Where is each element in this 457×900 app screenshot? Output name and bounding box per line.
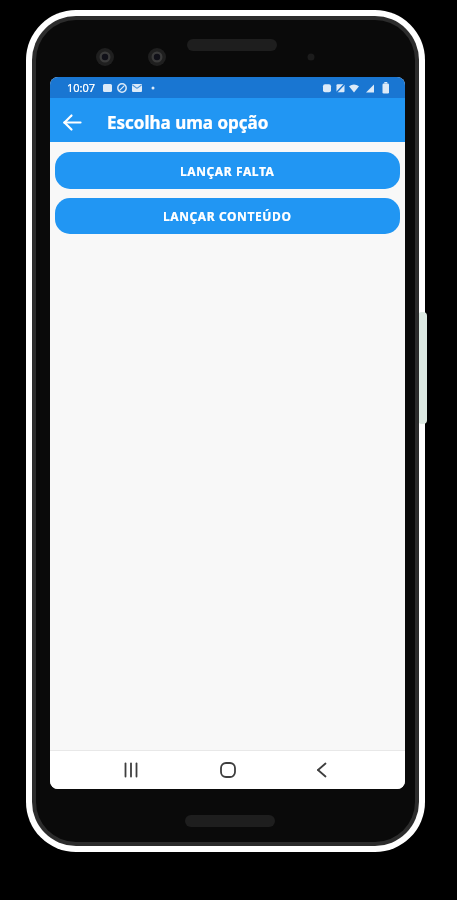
button[interactable]: [210, 754, 246, 786]
staticText: LANÇAR FALTA: [180, 163, 275, 179]
button[interactable]: [50, 102, 94, 142]
button[interactable]: LANÇAR CONTEÚDO: [55, 198, 400, 234]
staticText: 10:07: [67, 80, 96, 95]
button[interactable]: LANÇAR FALTA: [55, 152, 400, 189]
staticText: Escolha uma opção: [107, 111, 269, 134]
staticText: LANÇAR CONTEÚDO: [163, 208, 292, 224]
button[interactable]: [304, 754, 340, 786]
button[interactable]: [113, 754, 149, 786]
